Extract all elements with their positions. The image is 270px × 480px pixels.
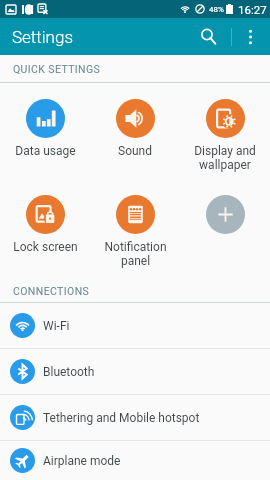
button[interactable]: Wi-Fi <box>0 303 270 348</box>
button[interactable]: Tethering and Mobile hotspot <box>0 395 270 440</box>
button[interactable] <box>180 195 270 270</box>
staticText: Lock screen <box>13 240 78 254</box>
staticText: Bluetooth <box>43 365 95 379</box>
staticText: Display and wallpaper <box>194 144 256 172</box>
button[interactable]: Bluetooth <box>0 349 270 394</box>
button[interactable]: Data usage <box>0 99 90 182</box>
staticText: 48% <box>209 5 224 14</box>
staticText: QUICK SETTINGS <box>13 63 101 75</box>
staticText: Data usage <box>15 144 76 158</box>
staticText: Sound <box>118 144 152 158</box>
button[interactable]: Lock screen <box>0 195 90 270</box>
button[interactable]: Sound <box>90 99 180 182</box>
button[interactable]: Search <box>186 18 231 55</box>
staticText: 16:27 <box>238 3 267 16</box>
staticText: Airplane mode <box>43 454 121 468</box>
staticText: Wi-Fi <box>43 319 70 333</box>
button[interactable]: Airplane mode <box>0 441 270 480</box>
staticText: Settings <box>12 27 74 47</box>
button[interactable]: Notification panel <box>90 195 180 270</box>
button[interactable]: Display and wallpaper <box>180 99 270 182</box>
staticText: Tethering and Mobile hotspot <box>43 411 200 425</box>
staticText: CONNECTIONS <box>13 285 90 297</box>
button[interactable]: More options <box>232 18 268 55</box>
staticText: Notification panel <box>104 240 167 268</box>
